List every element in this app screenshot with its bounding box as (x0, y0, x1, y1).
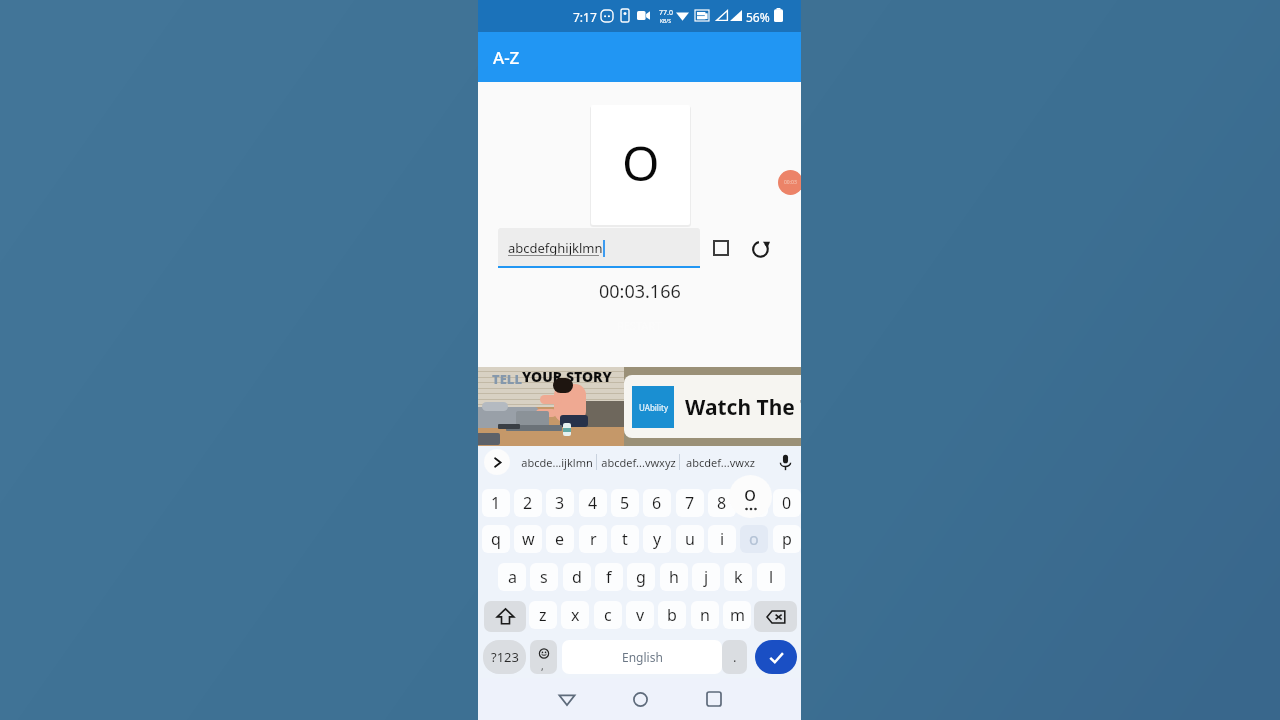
button[interactable]: More suggestions (484, 449, 510, 475)
staticText: v (636, 604, 645, 626)
staticText: ?123 (491, 648, 519, 666)
button[interactable]: Back (549, 681, 585, 717)
staticText: 6 (652, 492, 662, 514)
button[interactable]: a (498, 563, 526, 591)
button[interactable]: i (708, 525, 736, 553)
button[interactable]: ?123 (483, 640, 526, 674)
staticText: abcdefghijklmn (508, 239, 603, 257)
staticText: Watch The T (685, 393, 801, 422)
button[interactable]: 0 (773, 489, 801, 517)
staticText: 8 (717, 492, 727, 514)
button[interactable]: u (676, 525, 704, 553)
staticText: z (539, 604, 547, 626)
staticText: TELL (492, 370, 522, 388)
button[interactable]: c (594, 601, 622, 629)
staticText: y (653, 528, 662, 550)
button[interactable]: j (692, 563, 720, 591)
staticText: abcdef...vwxyz (601, 455, 676, 470)
button[interactable]: 5 (611, 489, 639, 517)
button[interactable]: y (643, 525, 671, 553)
button[interactable]: g (627, 563, 655, 591)
button[interactable]: Reset (748, 235, 774, 261)
button[interactable]: O (591, 105, 690, 225)
button[interactable]: 3 (546, 489, 574, 517)
staticText: a (508, 566, 517, 588)
button[interactable]: Emoji (530, 640, 557, 674)
staticText: 4 (588, 492, 598, 514)
button[interactable]: l (757, 563, 785, 591)
button[interactable]: Shift (484, 601, 526, 632)
staticText: 7 (685, 492, 695, 514)
button[interactable]: s (530, 563, 558, 591)
button[interactable]: UAbility (624, 375, 801, 438)
button[interactable]: abcde...ijklmn (518, 446, 596, 478)
button[interactable]: m (723, 601, 751, 629)
staticText: k (734, 566, 743, 588)
staticText: O (622, 130, 660, 195)
button[interactable]: abcdefghijklmn (498, 228, 700, 268)
staticText: i (720, 528, 725, 550)
button[interactable]: b (658, 601, 686, 629)
button[interactable]: d (563, 563, 591, 591)
button[interactable]: r (579, 525, 607, 553)
button[interactable]: 4 (579, 489, 607, 517)
staticText: 1 (491, 492, 501, 514)
staticText: t (622, 528, 628, 550)
staticText: 56% (746, 9, 770, 25)
staticText: 7:17 (573, 9, 597, 25)
staticText: A-Z (493, 46, 520, 69)
button[interactable]: z (529, 601, 557, 629)
staticText: YOUR STORY (522, 367, 612, 386)
button[interactable]: x (561, 601, 589, 629)
button[interactable]: 2 (514, 489, 542, 517)
button[interactable]: w (514, 525, 542, 553)
button[interactable]: 9 (740, 489, 768, 517)
button[interactable]: Stopwatch (778, 170, 801, 195)
staticText: KB/S (660, 18, 671, 25)
button[interactable]: Home (622, 681, 658, 717)
button[interactable]: e (546, 525, 574, 553)
staticText: m (730, 604, 745, 626)
button[interactable]: p (773, 525, 801, 553)
staticText: f (606, 566, 612, 588)
staticText: 77.0 (659, 8, 673, 18)
staticText: h (669, 566, 679, 588)
button[interactable]: Select (708, 235, 734, 261)
button[interactable]: q (482, 525, 510, 553)
button[interactable]: abcdef...vwxz (680, 446, 760, 478)
staticText: n (700, 604, 710, 626)
button[interactable]: abcdef...vwxyz (597, 446, 679, 478)
staticText: o (744, 480, 757, 507)
staticText: g (636, 566, 646, 588)
staticText: u (685, 528, 695, 550)
button[interactable]: Recent apps (696, 681, 732, 717)
button[interactable]: Period (722, 640, 747, 674)
button[interactable]: Backspace (754, 601, 797, 632)
button[interactable]: Enter (755, 640, 797, 674)
staticText: abcdef...vwxz (686, 455, 755, 470)
staticText: o (749, 528, 759, 550)
button[interactable]: v (626, 601, 654, 629)
button[interactable]: Voice input (774, 451, 796, 473)
button[interactable]: 7 (676, 489, 704, 517)
button[interactable]: h (660, 563, 688, 591)
staticText: l (769, 566, 774, 588)
button[interactable]: 6 (643, 489, 671, 517)
staticText: d (572, 566, 582, 588)
staticText: x (571, 604, 580, 626)
button[interactable]: k (724, 563, 752, 591)
button[interactable]: n (691, 601, 719, 629)
staticText: r (590, 528, 597, 550)
button[interactable]: o (740, 525, 768, 553)
staticText: b (667, 604, 677, 626)
button[interactable]: 8 (708, 489, 736, 517)
button[interactable]: t (611, 525, 639, 553)
staticText: w (522, 528, 535, 550)
staticText: 0 (782, 492, 792, 514)
button[interactable]: f (595, 563, 623, 591)
button[interactable]: English (562, 640, 722, 674)
button[interactable]: 1 (482, 489, 510, 517)
staticText: , (541, 659, 544, 673)
staticText: q (491, 528, 501, 550)
